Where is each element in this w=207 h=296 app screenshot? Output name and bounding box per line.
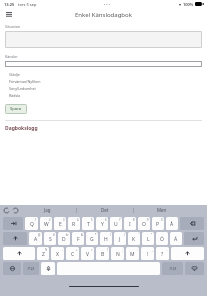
button[interactable]: /	[96, 247, 109, 260]
button[interactable]: shiftup	[3, 247, 35, 260]
button[interactable]: Å	[166, 217, 178, 230]
button[interactable]: Meny	[4, 10, 14, 20]
staticText: (	[110, 233, 111, 237]
staticText: Å	[170, 221, 174, 228]
staticText: U	[114, 221, 118, 228]
staticText: #	[53, 233, 55, 237]
button[interactable]: =	[81, 247, 94, 260]
button[interactable]: 6	[96, 217, 108, 230]
button[interactable]: ,	[141, 247, 154, 260]
button[interactable]: Rädsla	[5, 92, 202, 99]
button[interactable]: +	[66, 247, 79, 260]
staticText: .	[167, 248, 168, 252]
staticText: E	[59, 221, 62, 228]
staticText: Z	[42, 251, 45, 258]
staticText: 4	[77, 218, 79, 222]
staticText: Enkel Känslodagbok	[75, 11, 132, 19]
staticText: X	[56, 251, 59, 258]
button[interactable]: Det	[76, 205, 133, 215]
button[interactable]: Jag	[19, 205, 76, 215]
button[interactable]: Spara	[5, 104, 27, 114]
staticText: 2	[49, 218, 51, 222]
button[interactable]: 5	[82, 217, 94, 230]
button[interactable]: Språk	[3, 262, 21, 275]
staticText: 1	[35, 218, 37, 222]
button[interactable]: shiftup2	[171, 247, 204, 260]
button[interactable]: 4	[68, 217, 80, 230]
button[interactable]: Sorg/Ledsenhet	[5, 85, 202, 92]
staticText: Spara	[10, 106, 22, 112]
button[interactable]: Glädje	[5, 71, 202, 78]
button[interactable]: del	[180, 217, 204, 230]
button[interactable]: 3	[54, 217, 66, 230]
button[interactable]: -	[51, 247, 64, 260]
staticText: Jag	[44, 207, 51, 213]
staticText: kr	[66, 233, 69, 237]
staticText: Det	[101, 207, 109, 213]
button[interactable]: *	[86, 232, 98, 245]
staticText: =	[91, 248, 93, 252]
button[interactable]: )	[114, 232, 126, 245]
staticText: Situation	[5, 24, 21, 29]
staticText: Q	[30, 221, 34, 228]
staticText: 5	[91, 218, 93, 222]
button[interactable]: Förväntan/Nyfiken	[5, 78, 202, 85]
staticText: H	[104, 236, 108, 243]
button[interactable]: Gör om	[12, 207, 19, 214]
button[interactable]: 2	[40, 217, 52, 230]
staticText: F	[77, 236, 80, 243]
staticText: R	[72, 221, 76, 228]
staticText: B	[101, 251, 105, 258]
staticText: 9	[147, 218, 149, 222]
staticText: L	[147, 236, 150, 243]
staticText: Känslor	[5, 54, 18, 59]
staticText: .?123	[169, 267, 177, 271]
button[interactable]: 8	[124, 217, 136, 230]
button[interactable]: tab	[3, 217, 23, 230]
button[interactable]: "	[142, 232, 154, 245]
staticText: )	[124, 233, 125, 237]
button[interactable]	[5, 61, 202, 67]
button[interactable]: Dölj tangentbord	[185, 262, 204, 275]
staticText: S	[49, 236, 52, 243]
button[interactable]: Men	[133, 205, 190, 215]
button[interactable]: shift	[3, 232, 27, 245]
button[interactable]: 7	[110, 217, 122, 230]
button[interactable]: Diktera	[41, 262, 55, 275]
button[interactable]: ;	[111, 247, 124, 260]
button[interactable]: (	[100, 232, 112, 245]
button[interactable]: .	[156, 247, 169, 260]
staticText: ;	[122, 248, 123, 252]
button[interactable]: #	[44, 232, 56, 245]
staticText: Dagbokslogg	[5, 125, 38, 132]
button[interactable]: :	[126, 247, 139, 260]
staticText: ?	[161, 251, 164, 258]
button[interactable]: Ö	[156, 232, 168, 245]
button[interactable]: kr	[58, 232, 70, 245]
staticText: &	[81, 233, 83, 237]
button[interactable]: Siffror	[23, 262, 39, 275]
button[interactable]: Ångra	[3, 207, 10, 214]
button[interactable]: %	[37, 247, 49, 260]
button[interactable]: '	[128, 232, 140, 245]
staticText: Rädsla	[9, 93, 21, 98]
staticText: J	[119, 236, 121, 243]
button[interactable]: Ä	[170, 232, 182, 245]
button[interactable]: 9	[138, 217, 150, 230]
staticText: M	[130, 251, 135, 258]
button[interactable]: Siffror	[162, 262, 183, 275]
staticText: ,	[152, 248, 153, 252]
button[interactable]: enter	[184, 232, 204, 245]
staticText: O	[142, 221, 146, 228]
button[interactable]: &	[72, 232, 84, 245]
button[interactable]: 1	[25, 217, 38, 230]
button[interactable]	[5, 31, 202, 48]
button[interactable]: @	[29, 232, 42, 245]
staticText: 0	[161, 218, 163, 222]
button[interactable]: 0	[152, 217, 164, 230]
staticText: 100%	[183, 2, 194, 7]
staticText: G	[90, 236, 94, 243]
staticText: Förväntan/Nyfiken	[9, 79, 41, 84]
staticText: +	[76, 248, 78, 252]
